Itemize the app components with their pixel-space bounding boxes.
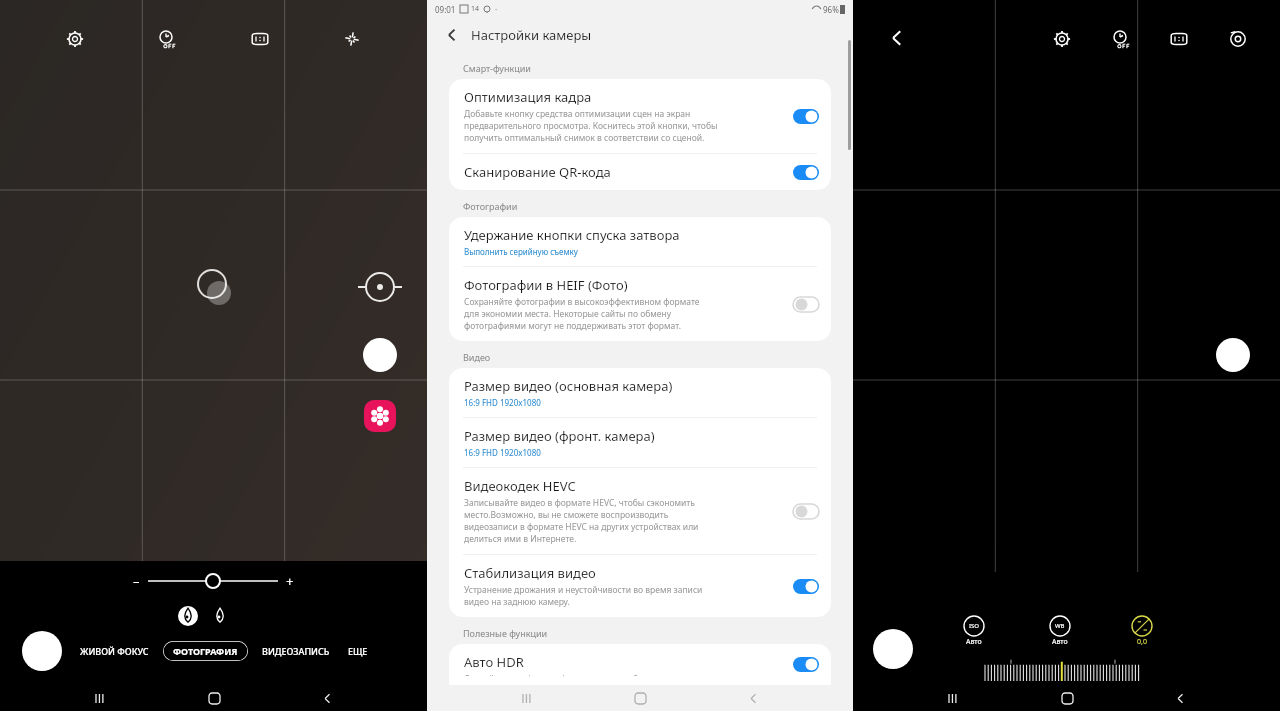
staticText: Авто xyxy=(1052,637,1068,647)
staticText: ЖИВОЙ ФОКУС xyxy=(80,645,149,657)
button[interactable]: Recents xyxy=(87,685,113,711)
staticText: Размер видео (фронт. камера) xyxy=(464,427,655,445)
button[interactable]: Off xyxy=(793,504,819,519)
staticText: Смарт-функции xyxy=(463,62,531,74)
button[interactable]: Home xyxy=(1054,685,1080,711)
staticText: + xyxy=(286,572,294,590)
button[interactable]: Home xyxy=(627,685,653,711)
button[interactable]: Удержание кнопки спуска затвора xyxy=(449,217,831,266)
button[interactable]: Сканирование QR-кода xyxy=(449,154,831,190)
button[interactable]: Стабилизация видео xyxy=(449,555,831,617)
staticText: – xyxy=(133,572,140,590)
button[interactable]: Back xyxy=(740,685,766,711)
button[interactable]: On xyxy=(793,109,819,124)
staticText: Фотографии в HEIF (Фото) xyxy=(464,276,628,294)
staticText: 09:01 xyxy=(435,4,456,15)
staticText: Размер видео (основная камера) xyxy=(464,377,673,395)
staticText: WB xyxy=(1055,622,1065,630)
staticText: 14 xyxy=(471,4,480,14)
button[interactable]: Авто HDR xyxy=(449,644,831,685)
button[interactable]: On xyxy=(793,579,819,594)
staticText: Записывайте видео в формате HEVC, чтобы … xyxy=(464,497,699,545)
button[interactable]: Aspect ratio 3:4 xyxy=(1162,22,1196,56)
button[interactable]: Off xyxy=(793,297,819,312)
staticText: ФОТОГРАФИЯ xyxy=(173,645,238,657)
staticText: Авто HDR xyxy=(464,653,524,671)
button[interactable]: Timer off xyxy=(150,22,184,56)
button[interactable]: Filter xyxy=(364,400,396,432)
button[interactable]: Beauty on xyxy=(178,606,198,626)
staticText: Удержание кнопки спуска затвора xyxy=(464,226,680,244)
button[interactable]: ФОТОГРАФИЯ xyxy=(163,641,248,661)
button[interactable]: Back xyxy=(1167,685,1193,711)
staticText: Сохраняйте фотографии в высокоэффективно… xyxy=(464,296,700,332)
staticText: 96% xyxy=(823,4,839,15)
button[interactable]: Settings xyxy=(1045,22,1079,56)
staticText: ВИДЕОЗАПИСЬ xyxy=(262,645,330,657)
button[interactable]: Фотографии в HEIF (Фото) xyxy=(449,267,831,341)
staticText: 16:9 FHD 1920x1080 xyxy=(464,447,541,458)
staticText: Сканирование QR-кода xyxy=(464,163,611,181)
button[interactable]: Размер видео (фронт. камера) xyxy=(449,418,831,467)
button[interactable]: ЖИВОЙ ФОКУС xyxy=(76,641,153,661)
button[interactable]: Effects xyxy=(335,22,369,56)
staticText: Устранение дрожания и неустойчивости во … xyxy=(464,584,703,608)
button[interactable]: Exposure xyxy=(1131,615,1153,637)
staticText: Настройки камеры xyxy=(471,26,592,44)
button[interactable]: Recents xyxy=(514,685,540,711)
button[interactable]: Timer off xyxy=(1104,22,1138,56)
staticText: Полезные функции xyxy=(463,627,548,639)
staticText: Фотографии xyxy=(463,200,518,212)
staticText: · xyxy=(495,4,498,15)
button[interactable]: Оптимизация кадра xyxy=(449,79,831,153)
button[interactable]: Aspect ratio 3:4 xyxy=(243,22,277,56)
staticText: Стабилизация видео xyxy=(464,564,596,582)
button[interactable]: Beauty off xyxy=(210,606,230,626)
button[interactable]: WB xyxy=(1049,615,1071,647)
button[interactable]: Settings xyxy=(58,22,92,56)
staticText: Видео xyxy=(463,351,491,363)
staticText: Оптимизация кадра xyxy=(464,88,592,106)
button[interactable]: Размер видео (основная камера) xyxy=(449,368,831,417)
staticText: 0,0 xyxy=(1137,637,1147,647)
staticText: ЕЩЕ xyxy=(348,645,368,657)
staticText: Добавьте кнопку средства оптимизации сце… xyxy=(464,108,718,144)
button[interactable]: ISO xyxy=(963,615,985,647)
button[interactable]: Home xyxy=(201,685,227,711)
staticText: Сделайте свои фотографии контрастнее бла… xyxy=(464,673,677,676)
button[interactable]: On xyxy=(793,657,819,672)
button[interactable]: On xyxy=(793,165,819,180)
staticText: Видеокодек HEVC xyxy=(464,477,576,495)
button[interactable]: Gallery xyxy=(22,631,62,671)
staticText: Выполнить серийную съемку xyxy=(464,246,578,257)
button[interactable]: Back xyxy=(883,24,911,52)
staticText: 16:9 FHD 1920x1080 xyxy=(464,397,541,408)
button[interactable]: Gallery xyxy=(873,629,913,669)
button[interactable]: Видеокодек HEVC xyxy=(449,468,831,554)
staticText: ISO xyxy=(969,622,980,630)
staticText: Авто xyxy=(966,637,982,647)
button[interactable]: Back xyxy=(314,685,340,711)
button[interactable]: Metering xyxy=(1221,22,1255,56)
button[interactable]: ЕЩЕ xyxy=(344,641,372,661)
button[interactable]: Back xyxy=(439,22,465,48)
button[interactable]: ВИДЕОЗАПИСЬ xyxy=(258,641,334,661)
button[interactable]: Recents xyxy=(940,685,966,711)
